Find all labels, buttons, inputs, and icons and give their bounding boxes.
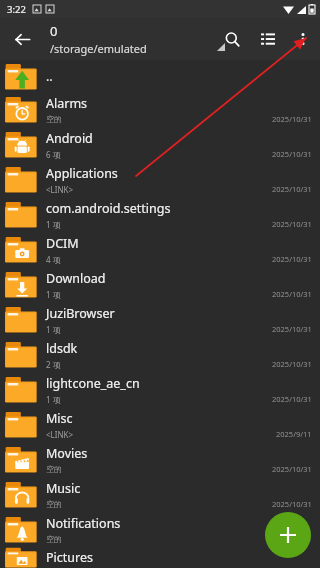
staticText: <LINK> (46, 429, 74, 440)
button[interactable]: .. (0, 60, 320, 92)
staticText: 空的 (46, 464, 62, 474)
staticText: 2025/10/31 (272, 499, 312, 509)
staticText: 2025/10/31 (272, 219, 312, 229)
staticText: 2025/9/11 (276, 429, 312, 439)
staticText: 2025/10/31 (272, 534, 312, 544)
button[interactable]: 0 (50, 22, 147, 56)
button[interactable]: com.android.settings (0, 197, 320, 232)
staticText: JuziBrowser (46, 305, 115, 322)
staticText: Notifications (46, 515, 121, 532)
staticText: /storage/emulated (50, 41, 147, 56)
staticText: ldsdk (46, 340, 78, 357)
button[interactable]: Pictures (0, 547, 320, 568)
button[interactable]: Music (0, 477, 320, 512)
button[interactable]: lightcone_ae_cn (0, 372, 320, 407)
staticText: 2025/10/31 (272, 289, 312, 299)
staticText: 2025/10/31 (272, 359, 312, 369)
staticText: lightcone_ae_cn (46, 375, 140, 392)
staticText: 2025/10/31 (272, 184, 312, 194)
staticText: Pictures (46, 549, 93, 566)
staticText: Misc (46, 410, 73, 427)
staticText: Movies (46, 445, 88, 462)
staticText: com.android.settings (46, 200, 171, 217)
staticText: 2 项 (46, 359, 61, 370)
staticText: 2025/10/31 (272, 149, 312, 159)
staticText: Download (46, 270, 106, 287)
staticText: 1 项 (46, 324, 61, 335)
staticText: 2025/10/31 (272, 254, 312, 264)
button[interactable]: Download (0, 267, 320, 302)
button[interactable]: ldsdk (0, 337, 320, 372)
staticText: Android (46, 130, 93, 147)
staticText: .. (46, 68, 53, 85)
staticText: Applications (46, 165, 118, 182)
staticText: 空的 (46, 534, 62, 544)
button[interactable]: View list (250, 21, 286, 57)
staticText: Music (46, 480, 81, 497)
button[interactable]: Android (0, 127, 320, 162)
staticText: DCIM (46, 235, 79, 252)
button[interactable]: Notifications (0, 512, 320, 547)
button[interactable]: Misc (0, 407, 320, 442)
button[interactable]: More options (286, 22, 320, 56)
button[interactable]: DCIM (0, 232, 320, 267)
staticText: 空的 (46, 114, 62, 124)
button[interactable]: JuziBrowser (0, 302, 320, 337)
staticText: Alarms (46, 95, 88, 112)
button[interactable]: Search (214, 21, 250, 57)
button[interactable]: Alarms (0, 92, 320, 127)
staticText: 2025/10/31 (272, 324, 312, 334)
staticText: 空的 (46, 499, 62, 509)
staticText: 1 项 (46, 289, 61, 300)
staticText: <LINK> (46, 184, 74, 195)
button[interactable]: Back (4, 21, 40, 57)
staticText: 3:22 (7, 3, 26, 16)
button[interactable]: Movies (0, 442, 320, 477)
button[interactable]: Create new (265, 512, 311, 558)
staticText: 4 项 (46, 254, 61, 265)
staticText: 0 (50, 22, 58, 40)
staticText: 2025/10/31 (272, 394, 312, 404)
staticText: 6 项 (46, 149, 61, 160)
button[interactable]: Applications (0, 162, 320, 197)
staticText: 2025/10/31 (272, 464, 312, 474)
staticText: 2025/10/31 (272, 114, 312, 124)
staticText: 1 项 (46, 219, 61, 230)
staticText: 1 项 (46, 394, 61, 405)
